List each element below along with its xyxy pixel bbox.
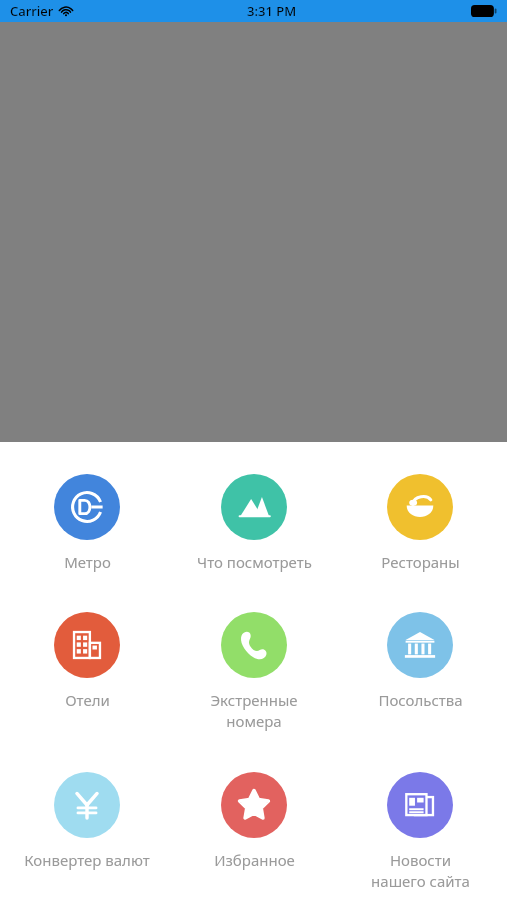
staticText: Метро [64, 552, 111, 572]
button[interactable]: Посольства [340, 612, 500, 710]
button[interactable]: Метро [7, 474, 167, 572]
staticText: Новости нашего сайта [371, 850, 470, 892]
button[interactable]: Экстренные номера [174, 612, 334, 732]
staticText: Отели [65, 690, 110, 710]
staticText: Что посмотреть [197, 552, 312, 572]
staticText: Конвертер валют [24, 850, 150, 870]
button[interactable]: Отели [7, 612, 167, 710]
staticText: Экстренные номера [210, 690, 298, 732]
button[interactable]: Конвертер валют [7, 772, 167, 870]
button[interactable]: Новости нашего сайта [340, 772, 500, 892]
button[interactable]: Что посмотреть [174, 474, 334, 572]
button[interactable]: Рестораны [340, 474, 500, 572]
staticText: Carrier [10, 2, 54, 20]
staticText: Избранное [214, 850, 295, 870]
staticText: Рестораны [381, 552, 460, 572]
staticText: 3:31 PM [247, 2, 297, 20]
button[interactable]: Избранное [174, 772, 334, 870]
staticText: Посольства [378, 690, 463, 710]
